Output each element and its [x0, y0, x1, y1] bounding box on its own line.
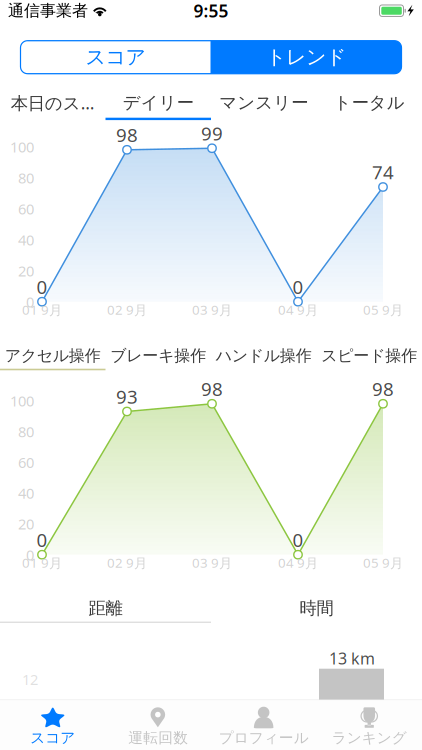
button[interactable]: マンスリー [211, 88, 316, 120]
staticText: 運転回数 [128, 729, 188, 747]
staticText: 40 [18, 230, 34, 249]
button[interactable]: プロフィール [211, 700, 316, 750]
staticText: 0 [36, 527, 47, 552]
staticText: 98 [372, 376, 394, 401]
staticText: アクセル操作 [5, 346, 101, 366]
staticText: 01 9月 [22, 301, 62, 318]
button[interactable]: トータル [316, 88, 422, 120]
button[interactable]: スピード操作 [316, 343, 422, 370]
staticText: 80 [18, 422, 34, 441]
staticText: 93 [116, 384, 138, 409]
staticText: 20 [18, 261, 34, 280]
staticText: 03 9月 [192, 301, 232, 318]
staticText: 05 9月 [363, 301, 403, 318]
staticText: デイリー [123, 92, 194, 113]
staticText: スピード操作 [321, 346, 417, 366]
staticText: 99 [201, 121, 223, 146]
staticText: 100 [10, 391, 34, 410]
staticText: プロフィール [219, 729, 309, 747]
staticText: 03 9月 [192, 554, 232, 571]
staticText: 01 9月 [22, 554, 62, 571]
button[interactable]: ブレーキ操作 [105, 343, 211, 370]
staticText: 12 [22, 669, 38, 689]
staticText: 60 [18, 453, 34, 472]
staticText: ランキング [332, 729, 407, 747]
staticText: 60 [18, 199, 34, 218]
staticText: ブレーキ操作 [110, 346, 206, 366]
staticText: 時間 [299, 598, 333, 619]
staticText: 02 9月 [107, 301, 147, 318]
staticText: トレンド [266, 45, 346, 69]
staticText: 通信事業者 [8, 1, 88, 21]
staticText: 9:55 [193, 0, 228, 22]
staticText: 80 [18, 168, 34, 187]
staticText: 距離 [88, 598, 122, 619]
staticText: 13 km [329, 648, 375, 669]
button[interactable]: 時間 [211, 595, 422, 623]
staticText: 04 9月 [278, 301, 318, 318]
staticText: 40 [18, 483, 34, 503]
staticText: 98 [116, 122, 138, 147]
button[interactable]: スコア [20, 41, 210, 74]
button[interactable]: トレンド [210, 41, 401, 74]
staticText: 本日のス… [11, 91, 95, 114]
button[interactable]: スコア [0, 700, 105, 750]
staticText: スコア [30, 729, 75, 747]
staticText: 05 9月 [363, 554, 403, 571]
button[interactable]: ランキング [316, 700, 422, 750]
staticText: 02 9月 [107, 554, 147, 571]
button[interactable]: アクセル操作 [0, 343, 105, 370]
button[interactable]: ハンドル操作 [211, 343, 316, 370]
staticText: 0 [36, 274, 47, 299]
staticText: ハンドル操作 [216, 346, 312, 366]
staticText: 100 [10, 137, 34, 156]
staticText: トータル [334, 92, 405, 113]
staticText: 74 [372, 160, 394, 184]
staticText: 0 [26, 545, 34, 564]
staticText: 0 [26, 292, 34, 311]
button[interactable]: 本日のス… [0, 88, 105, 120]
staticText: 0 [292, 274, 303, 299]
staticText: 0 [292, 527, 303, 552]
staticText: 20 [18, 514, 34, 534]
button[interactable]: 距離 [0, 595, 211, 623]
button[interactable]: デイリー [105, 88, 211, 120]
staticText: 04 9月 [278, 554, 318, 571]
staticText: 98 [201, 376, 223, 401]
button[interactable]: 運転回数 [105, 700, 211, 750]
staticText: スコア [85, 45, 145, 69]
staticText: マンスリー [219, 92, 308, 113]
